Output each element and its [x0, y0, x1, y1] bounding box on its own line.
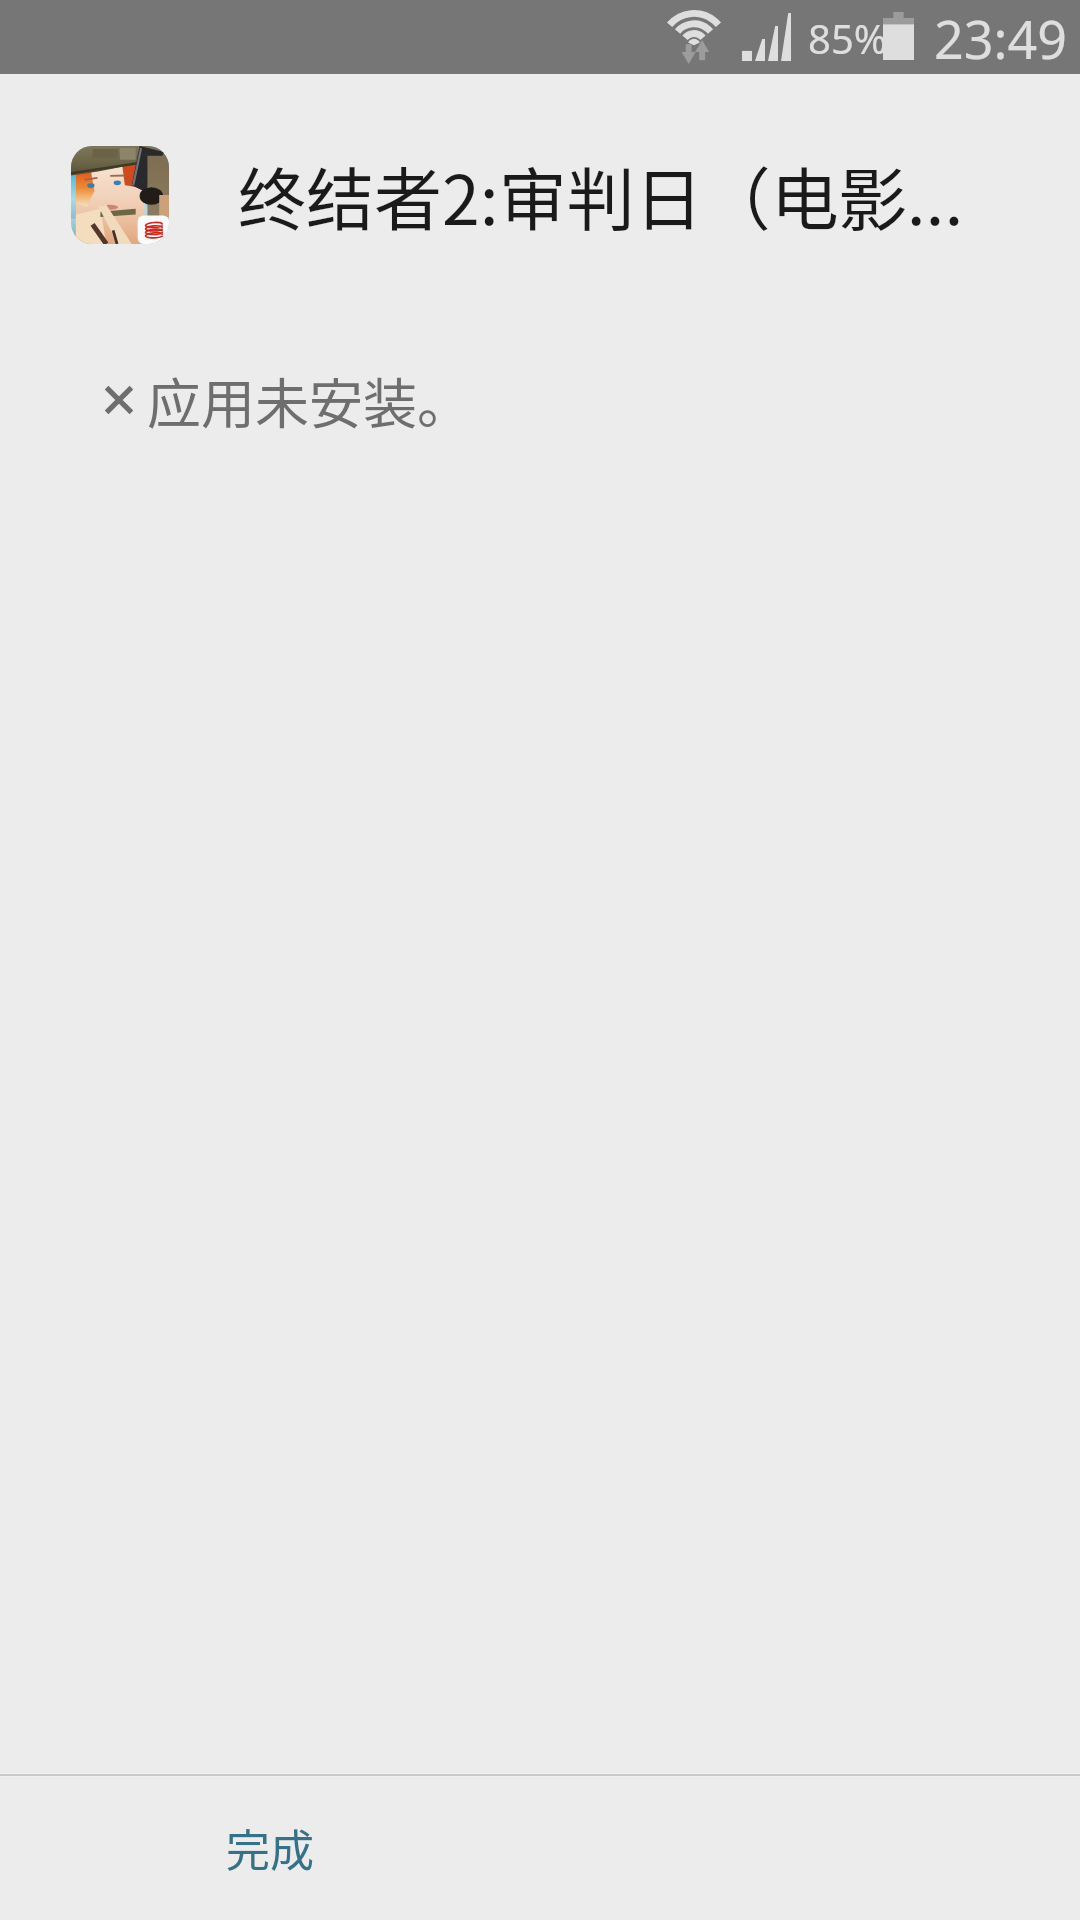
staticText: 23:49 — [934, 3, 1067, 74]
staticText: 85% — [808, 11, 887, 65]
other: Wi-Fi — [666, 9, 722, 64]
staticText: 完成 — [226, 1816, 314, 1880]
other: App icon — [71, 146, 169, 244]
other: Mobile signal — [742, 13, 791, 61]
button[interactable]: 完成 — [0, 1777, 1080, 1920]
staticText: 终结者2:审判日（电影... — [238, 146, 964, 244]
staticText: 应用未安装。 — [147, 361, 471, 439]
other: Battery 85 percent — [883, 12, 914, 60]
